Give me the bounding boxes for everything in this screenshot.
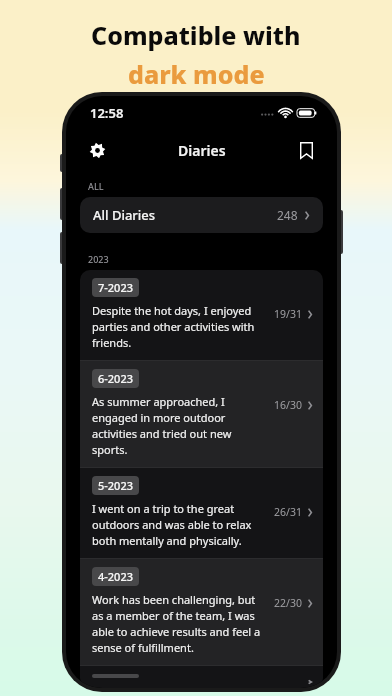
staticText: 12:58 [90, 104, 124, 122]
staticText: Compatible with [91, 18, 301, 52]
staticText: 7-2023 [98, 280, 133, 295]
button[interactable]: 3-2023 [80, 666, 323, 688]
button[interactable]: 7-2023 [80, 270, 323, 360]
staticText: ALL [88, 180, 104, 192]
staticText: All Diaries [93, 206, 156, 224]
staticText: 248 [277, 207, 298, 223]
staticText: 5-2023 [98, 478, 133, 493]
staticText: 26/31 [274, 505, 302, 519]
staticText: Work has been challenging, but as a memb… [92, 592, 266, 655]
staticText: 4-2023 [98, 569, 133, 584]
button[interactable]: 5-2023 [80, 468, 323, 558]
staticText: 22/30 [274, 596, 302, 610]
staticText: 2023 [88, 253, 109, 265]
staticText: Despite the hot days, I enjoyed parties … [92, 303, 266, 350]
staticText: Diaries [178, 141, 226, 160]
staticText: 16/30 [274, 398, 302, 412]
button[interactable]: Bookmarks [289, 133, 323, 167]
button[interactable]: All Diaries [80, 197, 323, 233]
staticText: 19/31 [274, 307, 302, 321]
staticText: As summer approached, I engaged in more … [92, 394, 266, 457]
staticText: dark mode [128, 57, 265, 91]
button[interactable]: 4-2023 [80, 559, 323, 665]
button[interactable]: 6-2023 [80, 361, 323, 467]
staticText: 6-2023 [98, 371, 133, 386]
button[interactable]: Settings [80, 133, 114, 167]
staticText: I went on a trip to the great outdoors a… [92, 501, 266, 548]
